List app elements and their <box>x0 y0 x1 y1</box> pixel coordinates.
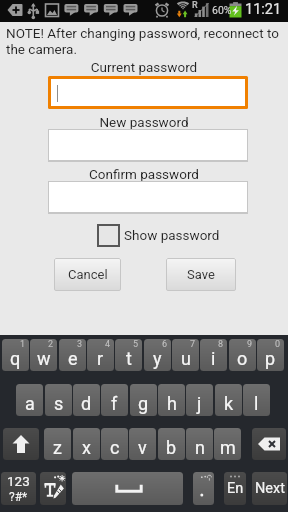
button[interactable]: Save <box>166 258 236 291</box>
staticText: y <box>153 348 162 369</box>
staticText: 7 <box>190 339 196 350</box>
button[interactable]: Backspace <box>252 428 286 460</box>
button[interactable] <box>51 79 245 106</box>
staticText: 5 <box>133 339 139 350</box>
staticText: k <box>224 393 234 414</box>
staticText: h <box>167 393 177 414</box>
staticText: e <box>68 348 78 369</box>
staticText: o <box>237 348 248 369</box>
button[interactable]: v <box>129 428 156 460</box>
button[interactable]: s <box>45 384 72 416</box>
staticText: m <box>220 437 236 458</box>
staticText: g <box>138 393 149 414</box>
button[interactable]: Shift <box>3 428 39 460</box>
button[interactable]: g <box>130 384 157 416</box>
staticText: Confirm password <box>0 166 288 182</box>
button[interactable]: Space <box>72 472 183 505</box>
button[interactable]: Cancel <box>54 258 121 291</box>
button[interactable]: Language <box>224 472 246 505</box>
button[interactable]: y <box>144 339 171 371</box>
staticText: Cancel <box>68 267 108 282</box>
staticText: New password <box>0 114 288 130</box>
button[interactable]: j <box>186 384 213 416</box>
button[interactable]: u <box>172 339 199 371</box>
button[interactable]: w <box>30 339 57 371</box>
staticText: z <box>53 437 62 458</box>
button[interactable]: k <box>215 384 242 416</box>
button[interactable]: h <box>158 384 185 416</box>
staticText: t <box>126 348 132 369</box>
staticText: v <box>138 437 147 458</box>
staticText: x <box>82 437 91 458</box>
button[interactable]: x <box>73 428 100 460</box>
staticText: l <box>254 393 259 414</box>
button[interactable]: f <box>101 384 128 416</box>
button[interactable]: Show password <box>97 223 220 247</box>
staticText: r <box>97 348 104 369</box>
staticText: 0 <box>275 339 281 350</box>
staticText: 11:21 <box>245 1 282 18</box>
staticText: j <box>197 393 202 414</box>
button[interactable]: o <box>229 339 256 371</box>
staticText: s <box>54 393 64 414</box>
staticText: En <box>227 480 244 497</box>
staticText: Show password <box>124 227 220 243</box>
staticText: f <box>111 393 118 414</box>
staticText: 2 <box>48 339 54 350</box>
staticText: q <box>10 348 21 369</box>
staticText: ?#* <box>9 490 28 504</box>
staticText: 60% <box>212 4 232 16</box>
button[interactable]: e <box>59 339 86 371</box>
button[interactable]: b <box>158 428 185 460</box>
button[interactable]: p <box>257 339 284 371</box>
button[interactable]: Symbols <box>1 472 36 505</box>
staticText: b <box>166 437 177 458</box>
staticText: Current password <box>0 59 288 75</box>
staticText: 1 <box>20 339 26 350</box>
staticText: 123 <box>7 473 30 489</box>
staticText: p <box>265 348 276 369</box>
button[interactable]: l <box>243 384 270 416</box>
button[interactable]: Handwriting <box>40 472 66 505</box>
button[interactable]: c <box>101 428 128 460</box>
staticText: Save <box>187 267 215 282</box>
staticText: R <box>192 0 198 11</box>
staticText: NOTE! After changing password, reconnect… <box>6 25 282 57</box>
button[interactable]: n <box>186 428 213 460</box>
button[interactable]: t <box>115 339 142 371</box>
button[interactable]: d <box>73 384 100 416</box>
staticText: n <box>195 437 205 458</box>
staticText: 4 <box>105 339 111 350</box>
button[interactable]: Period <box>193 472 214 505</box>
button[interactable]: q <box>2 339 29 371</box>
button[interactable]: z <box>44 428 71 460</box>
staticText: d <box>81 393 92 414</box>
button[interactable]: i <box>200 339 227 371</box>
staticText: i <box>211 348 216 369</box>
button[interactable]: Next <box>252 472 287 505</box>
staticText: u <box>181 348 191 369</box>
staticText: 6 <box>162 339 168 350</box>
button[interactable]: a <box>16 384 43 416</box>
button[interactable]: r <box>87 339 114 371</box>
staticText: 3 <box>77 339 83 350</box>
button[interactable]: m <box>214 428 241 460</box>
staticText: 9 <box>247 339 253 350</box>
staticText: Next <box>255 480 285 497</box>
staticText: 8 <box>218 339 224 350</box>
staticText: a <box>25 393 35 414</box>
staticText: c <box>110 437 120 458</box>
staticText: w <box>37 348 51 369</box>
